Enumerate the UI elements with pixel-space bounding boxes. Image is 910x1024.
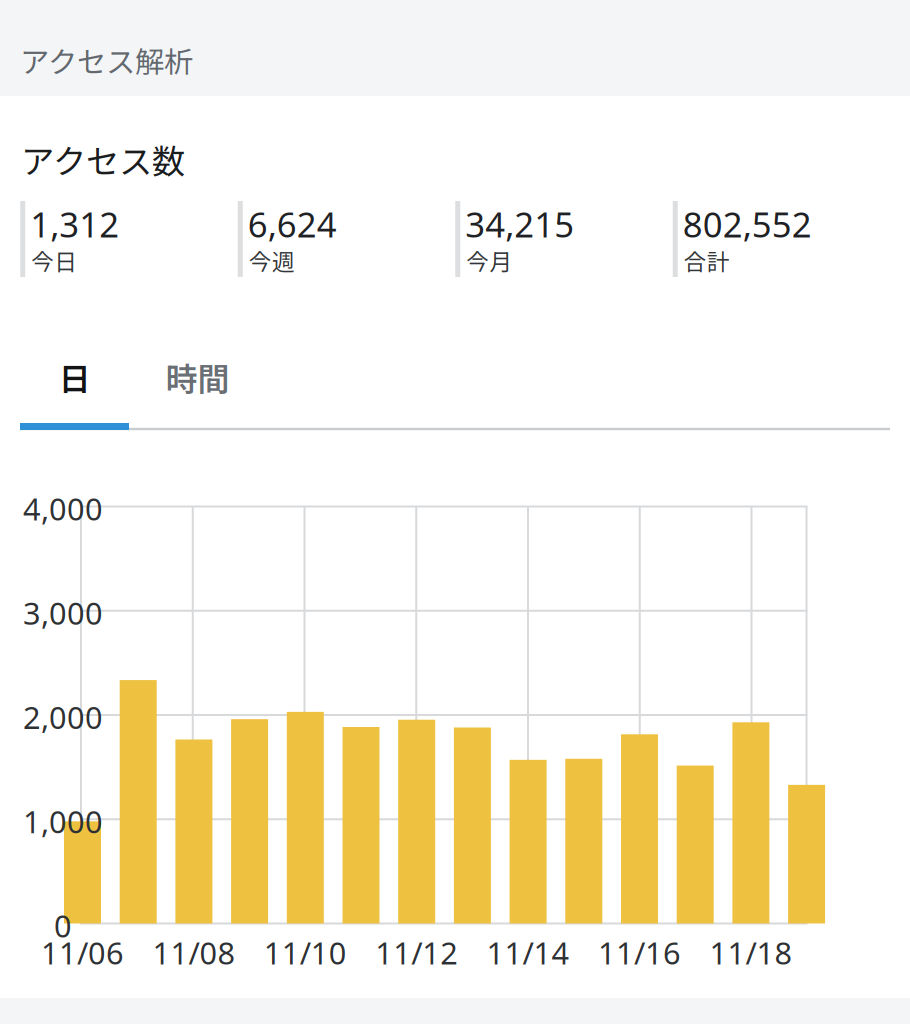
staticText: 1,000 (23, 801, 103, 842)
button[interactable]: 1,312 (20, 201, 237, 277)
staticText: 今月 (466, 244, 512, 277)
button[interactable]: 6,624 (238, 201, 455, 277)
staticText: 0 (54, 905, 72, 946)
staticText: 2,000 (23, 697, 103, 737)
staticText: 合計 (684, 244, 730, 277)
staticText: 6,624 (248, 201, 337, 247)
staticText: 11/16 (598, 932, 681, 973)
staticText: アクセス解析 (20, 39, 193, 81)
button[interactable]: 34,215 (455, 201, 672, 277)
staticText: 11/12 (375, 932, 458, 973)
staticText: 34,215 (465, 201, 574, 247)
staticText: 3,000 (23, 592, 103, 633)
staticText: 11/08 (152, 932, 235, 973)
staticText: 1,312 (30, 201, 119, 247)
staticText: 日 (58, 354, 90, 400)
staticText: アクセス数 (21, 135, 185, 183)
staticText: 11/18 (709, 932, 792, 973)
staticText: 11/06 (41, 932, 124, 973)
staticText: 11/10 (264, 932, 347, 973)
staticText: 4,000 (23, 488, 103, 529)
button[interactable]: 日 (20, 344, 129, 410)
staticText: 今日 (31, 244, 77, 277)
staticText: 今週 (249, 244, 295, 277)
staticText: 時間 (165, 354, 229, 400)
button[interactable]: 802,552 (673, 201, 890, 277)
staticText: 802,552 (683, 201, 812, 247)
button[interactable]: 時間 (143, 344, 252, 410)
staticText: 11/14 (487, 932, 570, 973)
